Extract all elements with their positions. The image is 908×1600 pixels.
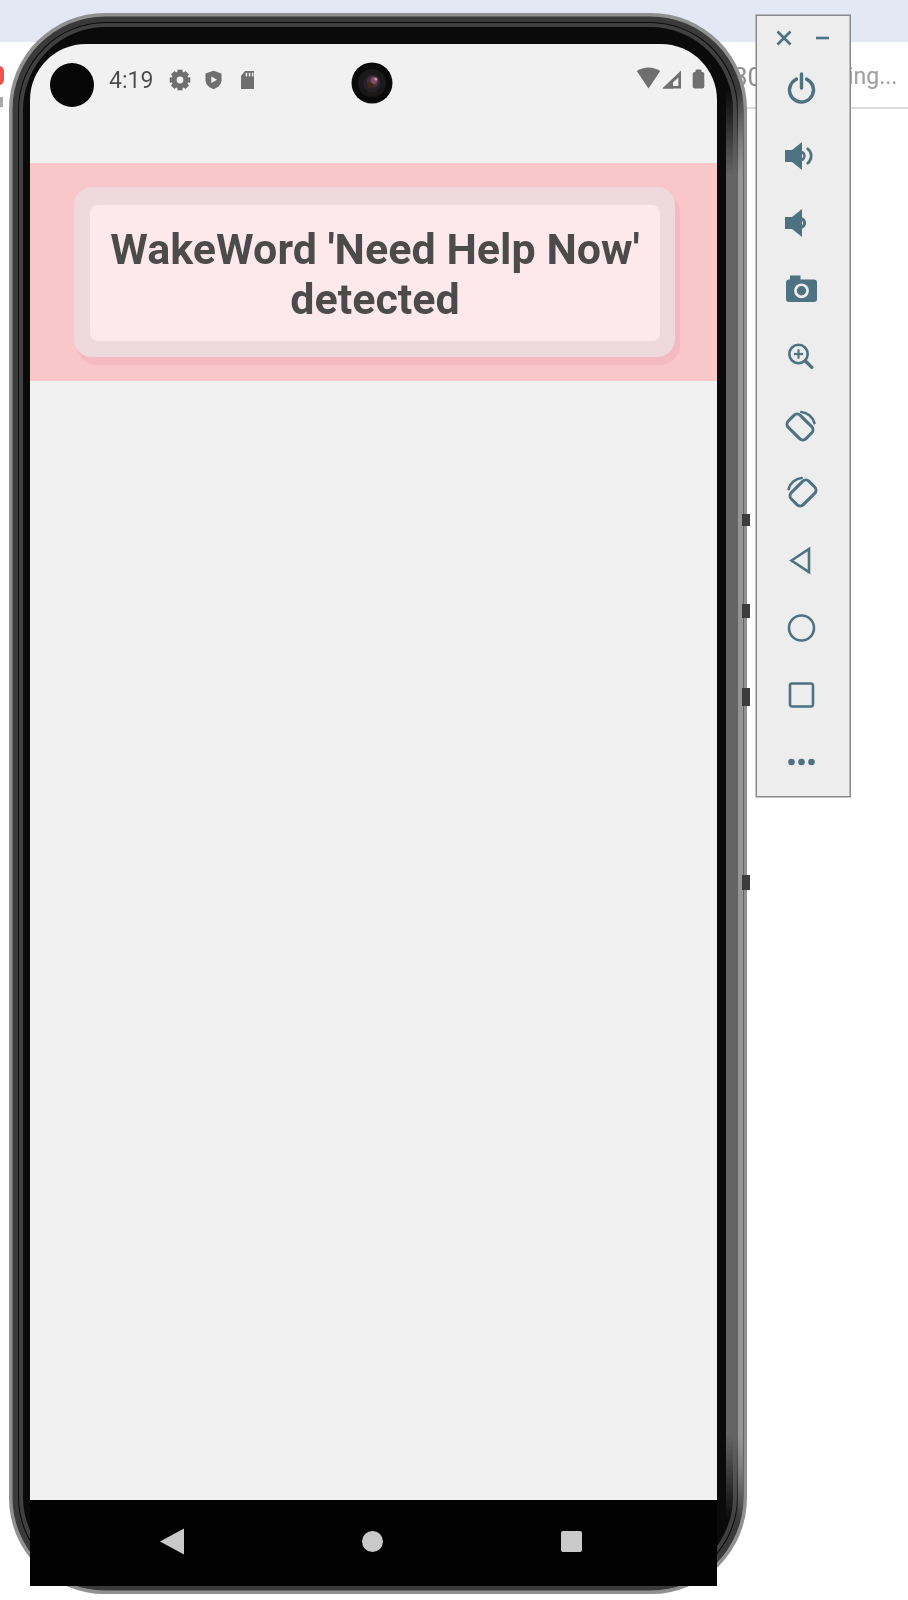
button[interactable] (541, 1512, 601, 1572)
button[interactable] (779, 201, 824, 245)
button[interactable] (779, 470, 824, 514)
staticText: 30 (733, 62, 763, 92)
button[interactable] (779, 134, 824, 178)
button[interactable] (779, 606, 824, 650)
button[interactable] (142, 1512, 202, 1572)
staticText: ing... (848, 63, 898, 90)
staticText: detected (290, 274, 460, 324)
button[interactable] (779, 740, 824, 784)
button[interactable] (779, 67, 824, 111)
button[interactable] (779, 268, 824, 312)
button[interactable] (779, 673, 824, 717)
button[interactable] (809, 25, 835, 51)
button[interactable]: WakeWord 'Need Help Now' (74, 189, 675, 359)
button[interactable] (771, 25, 797, 51)
button[interactable] (779, 538, 824, 582)
button[interactable] (779, 335, 824, 379)
button[interactable] (779, 403, 824, 447)
staticText: 4:19 (109, 67, 154, 94)
button[interactable] (342, 1512, 402, 1572)
staticText: WakeWord 'Need Help Now' (110, 224, 640, 274)
